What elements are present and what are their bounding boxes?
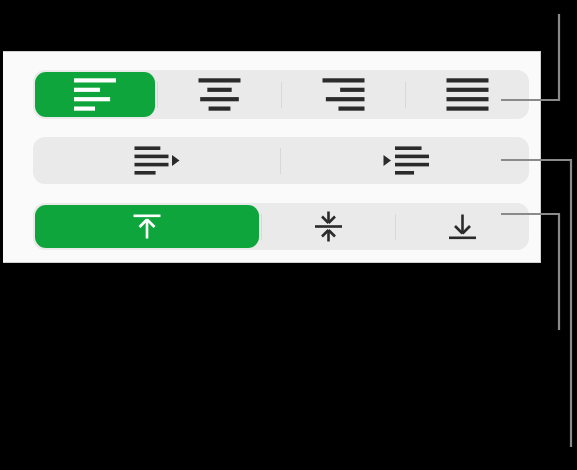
button[interactable]: Align left bbox=[35, 72, 155, 117]
button[interactable]: Justify bbox=[408, 72, 527, 117]
button[interactable]: Increase indent bbox=[283, 139, 527, 182]
button[interactable]: Align bottom bbox=[398, 205, 527, 248]
button[interactable]: Decrease indent bbox=[35, 139, 278, 182]
button[interactable]: Align right bbox=[284, 72, 403, 117]
button[interactable]: Align top bbox=[35, 205, 259, 248]
button[interactable]: Align middle bbox=[264, 205, 393, 248]
button[interactable]: Align center bbox=[160, 72, 279, 117]
